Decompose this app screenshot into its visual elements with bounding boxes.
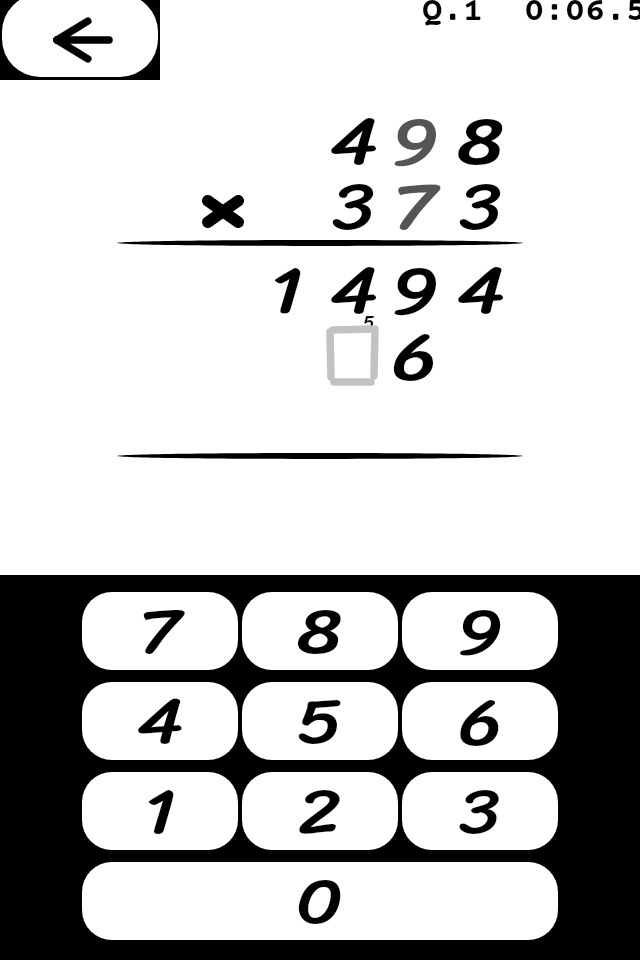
button[interactable]: 3 — [402, 772, 558, 850]
staticText: 2 — [298, 772, 342, 850]
staticText: 4 — [330, 231, 378, 350]
button[interactable]: 5 — [242, 682, 398, 760]
staticText: 3 — [459, 772, 501, 850]
button[interactable]: 8 — [242, 592, 398, 670]
staticText: 9 — [391, 231, 439, 350]
staticText: 7 — [138, 592, 182, 670]
staticText: 4 — [137, 682, 184, 760]
button[interactable]: Back — [2, 0, 158, 77]
staticText: 8 — [297, 592, 343, 670]
staticText: 7 — [392, 147, 437, 266]
staticText: 6 — [459, 682, 502, 760]
staticText: 1 — [144, 772, 176, 850]
staticText: 5 — [297, 682, 343, 760]
staticText: 8 — [457, 82, 504, 201]
button[interactable]: 0 — [82, 862, 558, 940]
staticText: 9 — [391, 82, 439, 201]
staticText: 0 — [296, 862, 344, 940]
staticText: 5 — [363, 306, 375, 328]
staticText: 4 — [330, 82, 378, 201]
staticText: 3 — [459, 147, 502, 266]
staticText: 4 — [457, 231, 505, 350]
staticText: Q.1 0:06.5 — [422, 0, 640, 31]
button[interactable]: 7 — [82, 592, 238, 670]
button[interactable]: 6 — [402, 682, 558, 760]
staticText: 1 — [270, 231, 303, 350]
staticText: 3 — [332, 147, 375, 266]
staticText: 9 — [457, 592, 503, 670]
button[interactable]: 9 — [402, 592, 558, 670]
button[interactable]: 1 — [82, 772, 238, 850]
button[interactable]: 2 — [242, 772, 398, 850]
staticText: 6 — [392, 297, 437, 416]
button[interactable]: 4 — [82, 682, 238, 760]
